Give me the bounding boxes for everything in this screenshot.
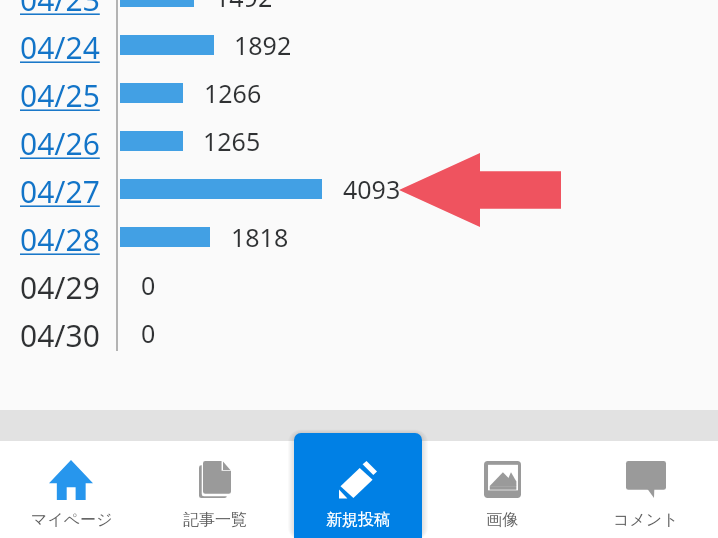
staticText: 1265 — [203, 124, 261, 158]
button[interactable]: My Page — [0, 433, 143, 538]
button[interactable]: 04/29 — [20, 267, 100, 308]
staticText: マイページ — [31, 510, 113, 530]
staticText: 0 — [141, 316, 156, 350]
staticText: 記事一覧 — [183, 510, 247, 530]
staticText: 04/24 — [20, 27, 100, 68]
staticText: 1818 — [231, 220, 289, 254]
button[interactable]: Articles — [143, 433, 286, 538]
staticText: 新規投稿 — [326, 510, 390, 530]
staticText: 04/26 — [20, 123, 100, 164]
button[interactable]: Comments — [574, 433, 718, 538]
button[interactable]: 04/28 — [20, 219, 100, 260]
button[interactable]: Images — [430, 433, 574, 538]
staticText: 04/29 — [20, 267, 100, 308]
staticText: 1892 — [234, 28, 292, 62]
staticText: 4093 — [343, 172, 401, 206]
staticText: 04/27 — [20, 171, 100, 212]
button[interactable]: 04/24 — [20, 27, 100, 68]
staticText: 04/30 — [20, 315, 100, 356]
button[interactable]: 04/23 — [20, 0, 100, 20]
staticText: コメント — [613, 510, 679, 530]
staticText: 04/28 — [20, 219, 100, 260]
staticText: 1266 — [204, 76, 262, 110]
staticText: 04/23 — [20, 0, 100, 20]
button[interactable]: 04/30 — [20, 315, 100, 356]
staticText: 画像 — [486, 510, 518, 530]
staticText: 1492 — [215, 0, 273, 14]
button[interactable]: 04/27 — [20, 171, 100, 212]
staticText: 0 — [141, 268, 156, 302]
staticText: 04/25 — [20, 75, 100, 116]
button[interactable]: New post — [286, 433, 430, 538]
button[interactable]: 04/26 — [20, 123, 100, 164]
button[interactable]: 04/25 — [20, 75, 100, 116]
